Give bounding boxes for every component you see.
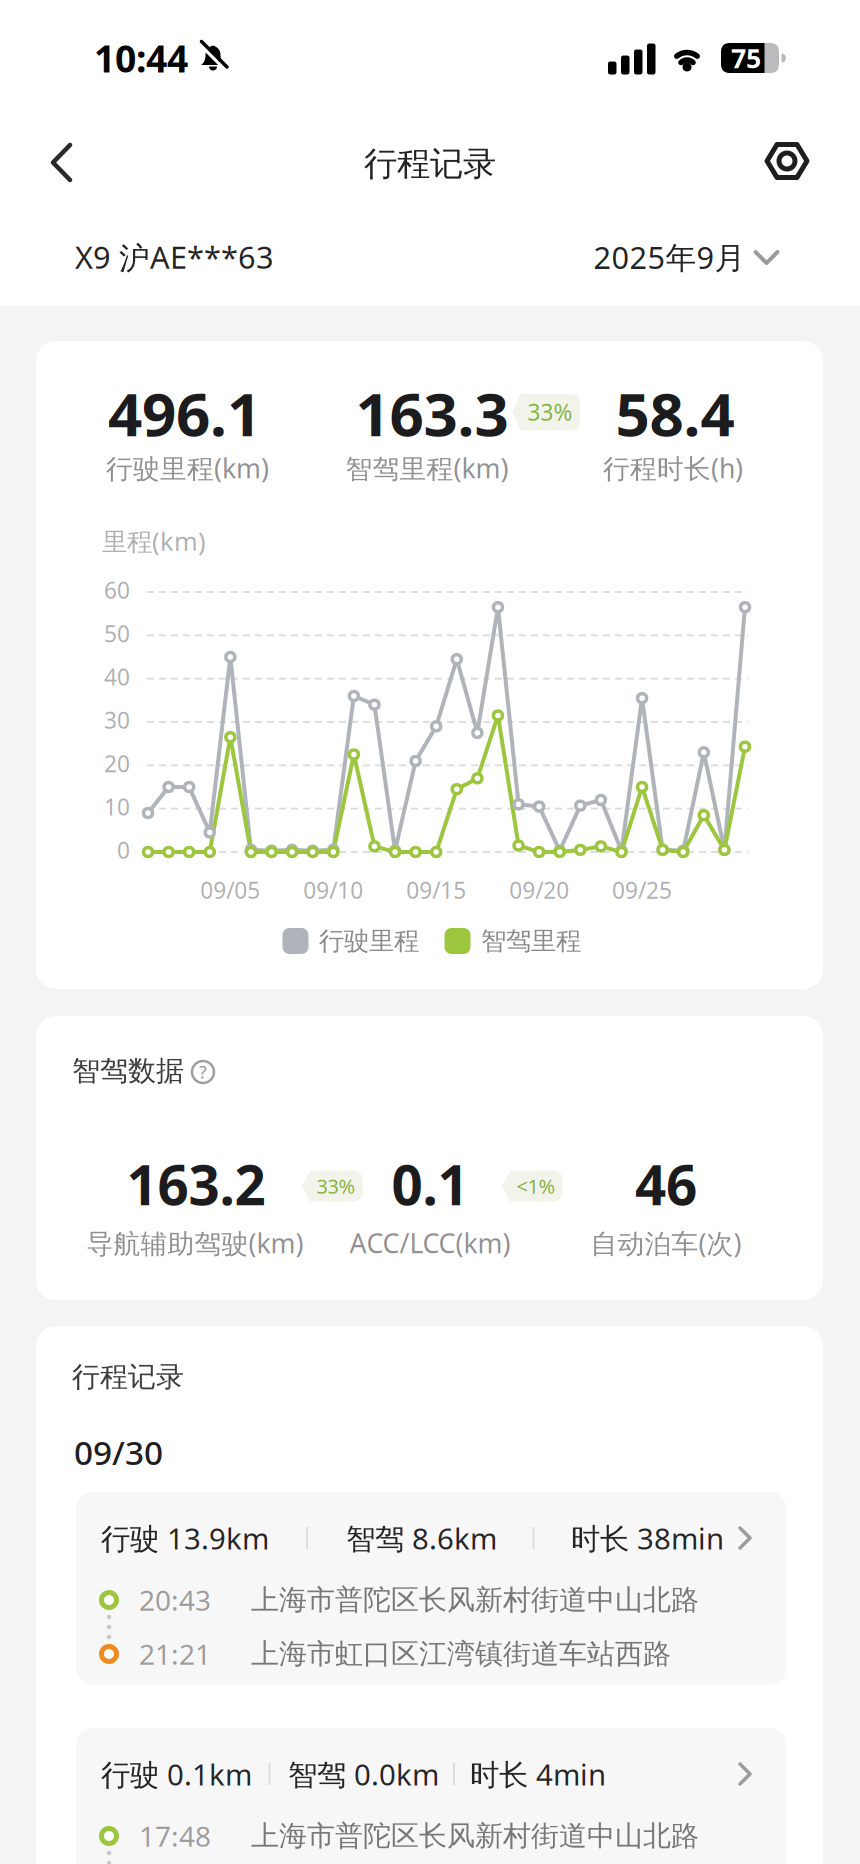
staticText: 40 bbox=[104, 662, 130, 692]
staticText: 09/20 bbox=[509, 875, 569, 905]
staticText: 智驾里程(km) bbox=[345, 450, 508, 486]
staticText: 10 bbox=[104, 792, 130, 822]
staticText: 163.2 bbox=[126, 1148, 265, 1220]
staticText: 行程记录 bbox=[72, 1360, 184, 1394]
staticText: 智驾 8.6km bbox=[346, 1518, 497, 1557]
staticText: 60 bbox=[104, 575, 130, 605]
button[interactable]: Settings bbox=[747, 121, 827, 201]
staticText: 20:43 bbox=[139, 1581, 211, 1619]
button[interactable]: Back bbox=[0, 120, 88, 204]
staticText: 0.1 bbox=[391, 1148, 468, 1220]
staticText: 20 bbox=[104, 748, 130, 778]
staticText: 时长 38min bbox=[571, 1518, 724, 1557]
staticText: 智驾数据 bbox=[72, 1054, 184, 1088]
staticText: 行驶 13.9km bbox=[101, 1518, 269, 1557]
staticText: 智驾里程 bbox=[481, 925, 581, 956]
staticText: 上海市虹口区江湾镇街道车站西路 bbox=[251, 1637, 671, 1671]
staticText: 智驾 0.0km bbox=[288, 1754, 439, 1793]
staticText: 上海市普陀区长风新村街道中山北路 bbox=[251, 1583, 699, 1617]
staticText: 09/30 bbox=[74, 1430, 163, 1474]
button[interactable]: 行驶 0.1km bbox=[76, 1728, 786, 1864]
staticText: 75 bbox=[731, 40, 761, 76]
staticText: 2025年9月 bbox=[593, 237, 745, 277]
staticText: 09/25 bbox=[612, 875, 672, 905]
staticText: 导航辅助驾驶(km) bbox=[86, 1225, 303, 1261]
staticText: X9 沪AE***63 bbox=[75, 237, 274, 277]
staticText: 0 bbox=[117, 835, 130, 865]
staticText: 行驶里程 bbox=[319, 925, 419, 956]
staticText: ACC/LCC(km) bbox=[349, 1225, 510, 1261]
staticText: 50 bbox=[104, 618, 130, 648]
staticText: 46 bbox=[635, 1148, 697, 1220]
staticText: 行驶 0.1km bbox=[101, 1754, 252, 1793]
button[interactable]: 行驶 13.9km bbox=[76, 1492, 786, 1685]
staticText: 496.1 bbox=[108, 373, 261, 453]
staticText: 30 bbox=[104, 705, 130, 735]
button[interactable]: X9 沪AE***63 bbox=[75, 227, 295, 287]
staticText: 09/10 bbox=[303, 875, 363, 905]
staticText: 21:21 bbox=[139, 1635, 211, 1673]
staticText: 09/05 bbox=[200, 875, 260, 905]
button[interactable]: 2025年9月 bbox=[593, 227, 778, 287]
staticText: 行程时长(h) bbox=[603, 450, 743, 486]
staticText: 自动泊车(次) bbox=[590, 1225, 741, 1261]
staticText: 时长 4min bbox=[470, 1754, 606, 1793]
staticText: ? bbox=[199, 1060, 207, 1083]
staticText: 里程(km) bbox=[102, 524, 206, 558]
staticText: 行程记录 bbox=[364, 143, 496, 184]
staticText: <1% bbox=[516, 1173, 555, 1199]
staticText: 10:44 bbox=[94, 33, 188, 83]
staticText: 33% bbox=[527, 397, 572, 427]
staticText: 58.4 bbox=[615, 373, 734, 453]
staticText: 09/15 bbox=[406, 875, 466, 905]
staticText: 17:48 bbox=[139, 1817, 211, 1855]
staticText: 上海市普陀区长风新村街道中山北路 bbox=[251, 1819, 699, 1853]
staticText: 行驶里程(km) bbox=[106, 450, 269, 486]
staticText: 33% bbox=[316, 1173, 355, 1199]
staticText: 163.3 bbox=[355, 373, 508, 453]
button[interactable]: 智驾数据说明 bbox=[191, 1060, 215, 1084]
